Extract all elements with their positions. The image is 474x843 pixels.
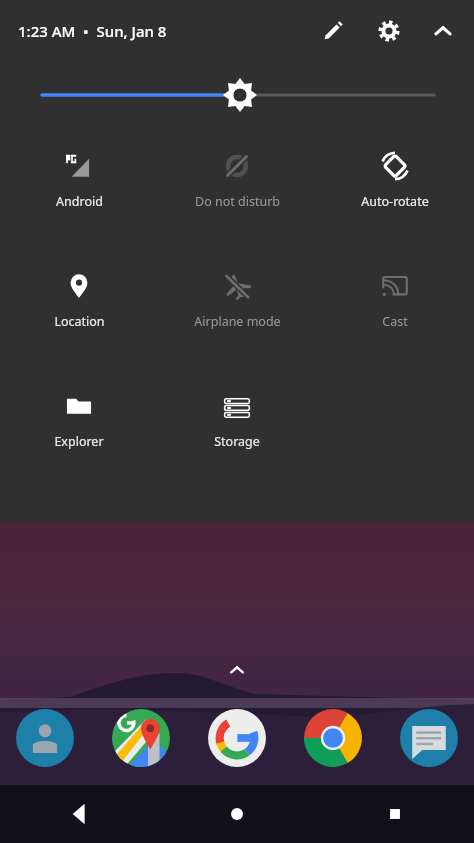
staticText: Auto-rotate (361, 193, 429, 210)
button[interactable]: Google (206, 707, 268, 769)
button[interactable]: Home (158, 785, 316, 843)
staticText: Explorer (54, 433, 104, 450)
button[interactable]: Explorer (0, 374, 158, 494)
button[interactable]: Chrome (302, 707, 364, 769)
button[interactable]: All apps (222, 655, 252, 685)
button[interactable]: Location (0, 254, 158, 374)
staticText: 1:23 AM • Sun, Jan 8 (18, 21, 167, 41)
button[interactable]: Brightness (0, 62, 474, 128)
button[interactable]: Back (0, 785, 158, 843)
staticText: Android (56, 193, 103, 210)
button[interactable]: Do not disturb (158, 134, 316, 254)
staticText: Storage (214, 433, 260, 450)
staticText: Do not disturb (195, 193, 280, 210)
button[interactable]: Auto-rotate (316, 134, 474, 254)
button[interactable]: Settings (372, 14, 406, 48)
button[interactable]: Contacts (14, 707, 76, 769)
staticText: Cast (382, 313, 408, 330)
staticText: Location (54, 313, 105, 330)
button[interactable]: Android (0, 134, 158, 254)
button[interactable]: Storage (158, 374, 316, 494)
staticText: Airplane mode (194, 313, 281, 330)
button[interactable]: Messages (398, 707, 460, 769)
button[interactable]: Cast (316, 254, 474, 374)
button[interactable]: Collapse (426, 14, 460, 48)
button[interactable]: Edit (316, 14, 350, 48)
button[interactable]: Recents (316, 785, 474, 843)
button[interactable]: Maps (110, 707, 172, 769)
button[interactable]: Airplane mode (158, 254, 316, 374)
